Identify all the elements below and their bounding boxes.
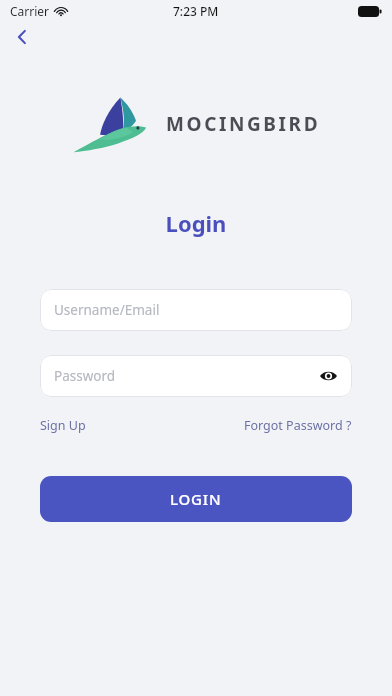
button[interactable]: LOGIN: [40, 476, 352, 522]
staticText: Username/Email: [54, 301, 160, 319]
button[interactable]: Password: [40, 355, 352, 397]
button[interactable]: Back: [0, 22, 44, 52]
button[interactable]: Username/Email: [40, 289, 352, 331]
staticText: Sign Up: [40, 417, 86, 434]
button[interactable]: Show password: [314, 362, 342, 390]
staticText: MOCINGBIRD: [166, 111, 321, 137]
button[interactable]: Sign Up: [40, 417, 86, 434]
staticText: LOGIN: [170, 489, 222, 509]
staticText: Password: [54, 367, 116, 385]
button[interactable]: Forgot Password ?: [244, 417, 352, 434]
staticText: Login: [0, 208, 392, 238]
staticText: Carrier: [10, 3, 50, 19]
staticText: Forgot Password ?: [244, 417, 352, 434]
staticText: 7:23 PM: [173, 3, 219, 19]
